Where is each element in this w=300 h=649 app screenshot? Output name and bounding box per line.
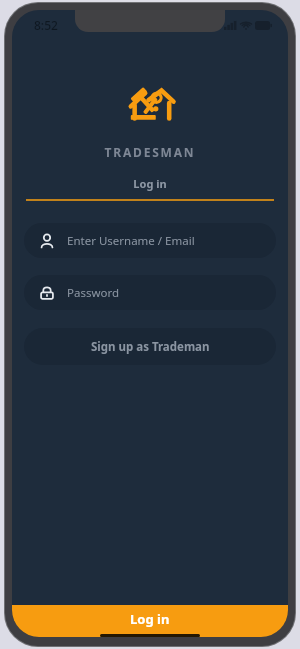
staticText: Password bbox=[67, 285, 120, 301]
button[interactable]: Password bbox=[24, 275, 276, 310]
staticText: Log in bbox=[12, 176, 288, 191]
button[interactable]: Log in bbox=[12, 605, 288, 637]
staticText: Enter Username / Email bbox=[67, 233, 195, 249]
staticText: Sign up as Trademan bbox=[91, 339, 210, 355]
button[interactable]: Enter Username / Email bbox=[24, 223, 276, 258]
staticText: 8:52 bbox=[34, 17, 58, 33]
staticText: Log in bbox=[130, 610, 170, 628]
button[interactable]: Sign up as Trademan bbox=[24, 328, 276, 365]
button[interactable]: Log in bbox=[12, 176, 288, 191]
staticText: TRADESMAN bbox=[12, 144, 288, 160]
